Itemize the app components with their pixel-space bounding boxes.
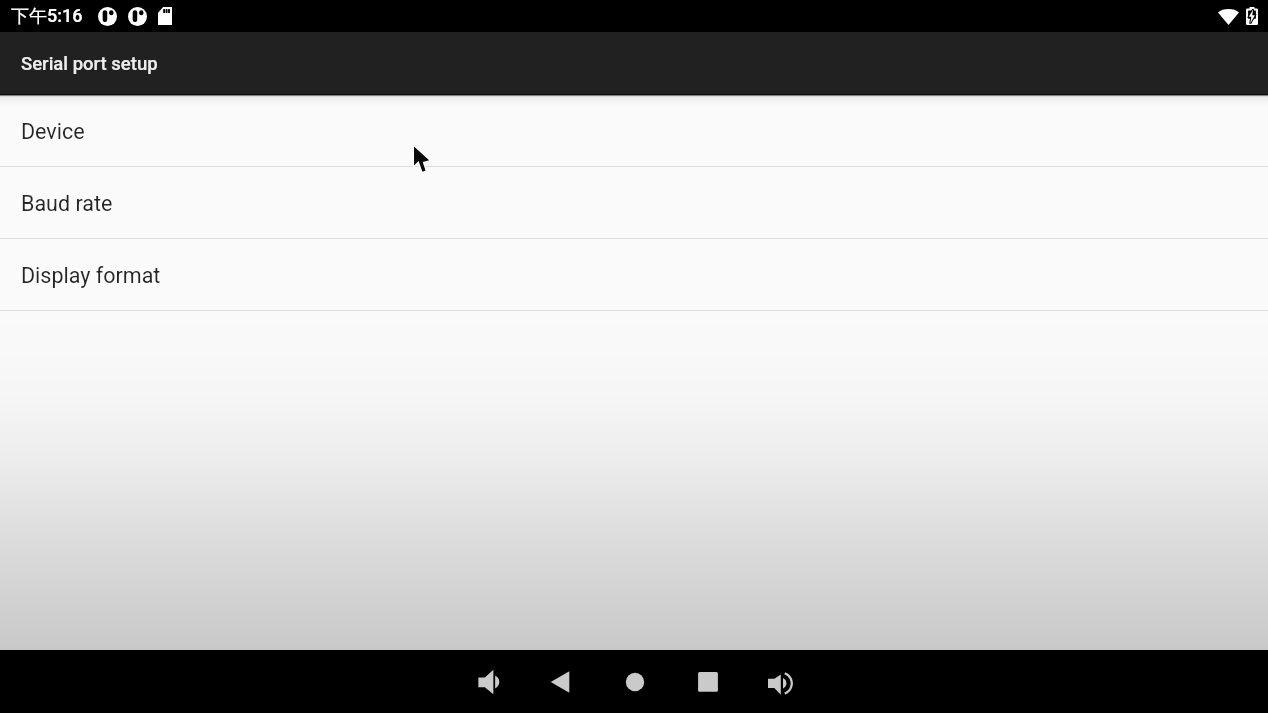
staticText: Baud rate: [21, 191, 113, 216]
staticText: Serial port setup: [21, 53, 158, 75]
button[interactable]: Baud rate: [0, 167, 1268, 239]
button[interactable]: Recents: [671, 650, 744, 713]
button[interactable]: Back: [525, 650, 598, 713]
button[interactable]: Volume down: [452, 650, 525, 713]
staticText: 下午5:16: [11, 5, 83, 28]
staticText: Device: [21, 119, 85, 144]
button[interactable]: Device: [0, 94, 1268, 167]
button[interactable]: Volume up: [744, 650, 817, 713]
staticText: Display format: [21, 263, 161, 288]
button[interactable]: Home: [598, 650, 671, 713]
button[interactable]: Display format: [0, 239, 1268, 311]
